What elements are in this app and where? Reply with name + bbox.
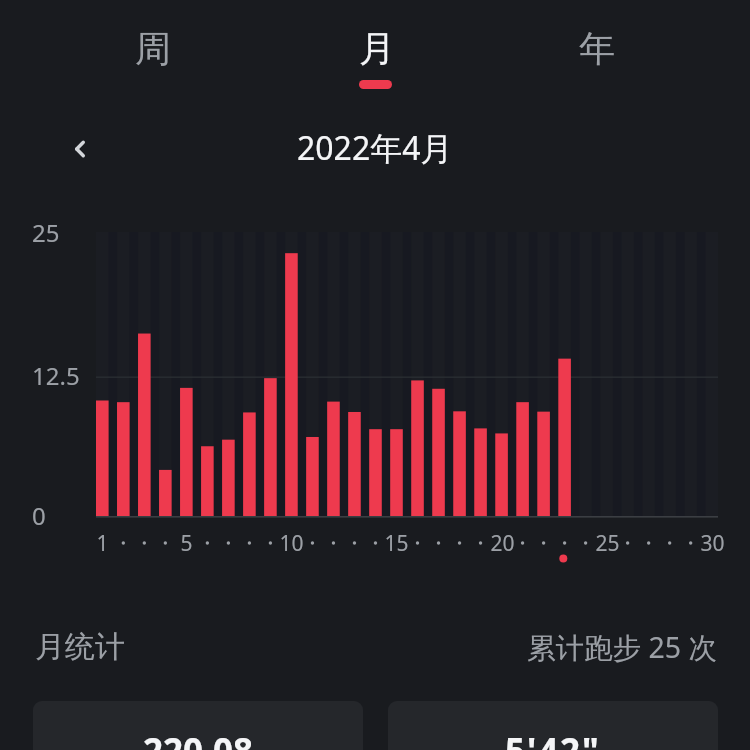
button[interactable]: 周 — [93, 17, 213, 79]
other: Monthly running distance bar chart — [0, 0, 750, 750]
staticText: 25 — [595, 529, 620, 557]
staticText: 10 — [279, 529, 304, 557]
staticText: 20 — [490, 529, 515, 557]
button[interactable]: Previous month — [56, 125, 104, 173]
button[interactable]: 年 — [537, 17, 657, 79]
staticText: 15 — [384, 529, 409, 557]
button[interactable]: 月 — [317, 17, 437, 79]
button[interactable]: 2022年4月 — [275, 126, 475, 170]
staticText: 周 — [135, 26, 171, 71]
staticText: 25 — [32, 216, 60, 249]
staticText: 年 — [579, 26, 615, 71]
staticText: 累计跑步 25 次 — [527, 628, 717, 667]
staticText: 30 — [700, 529, 725, 557]
staticText: 月统计 — [35, 628, 125, 666]
button[interactable]: 5'42" — [388, 701, 718, 750]
staticText: 2022年4月 — [297, 126, 453, 170]
staticText: 0 — [32, 499, 46, 532]
staticText: 5'42" — [505, 727, 601, 750]
staticText: 5 — [180, 529, 193, 557]
staticText: 1 — [96, 529, 109, 557]
staticText: 月 — [359, 26, 395, 71]
staticText: 12.5 — [32, 359, 80, 392]
staticText: 220.08 — [143, 727, 253, 750]
button[interactable]: 220.08 — [33, 701, 363, 750]
